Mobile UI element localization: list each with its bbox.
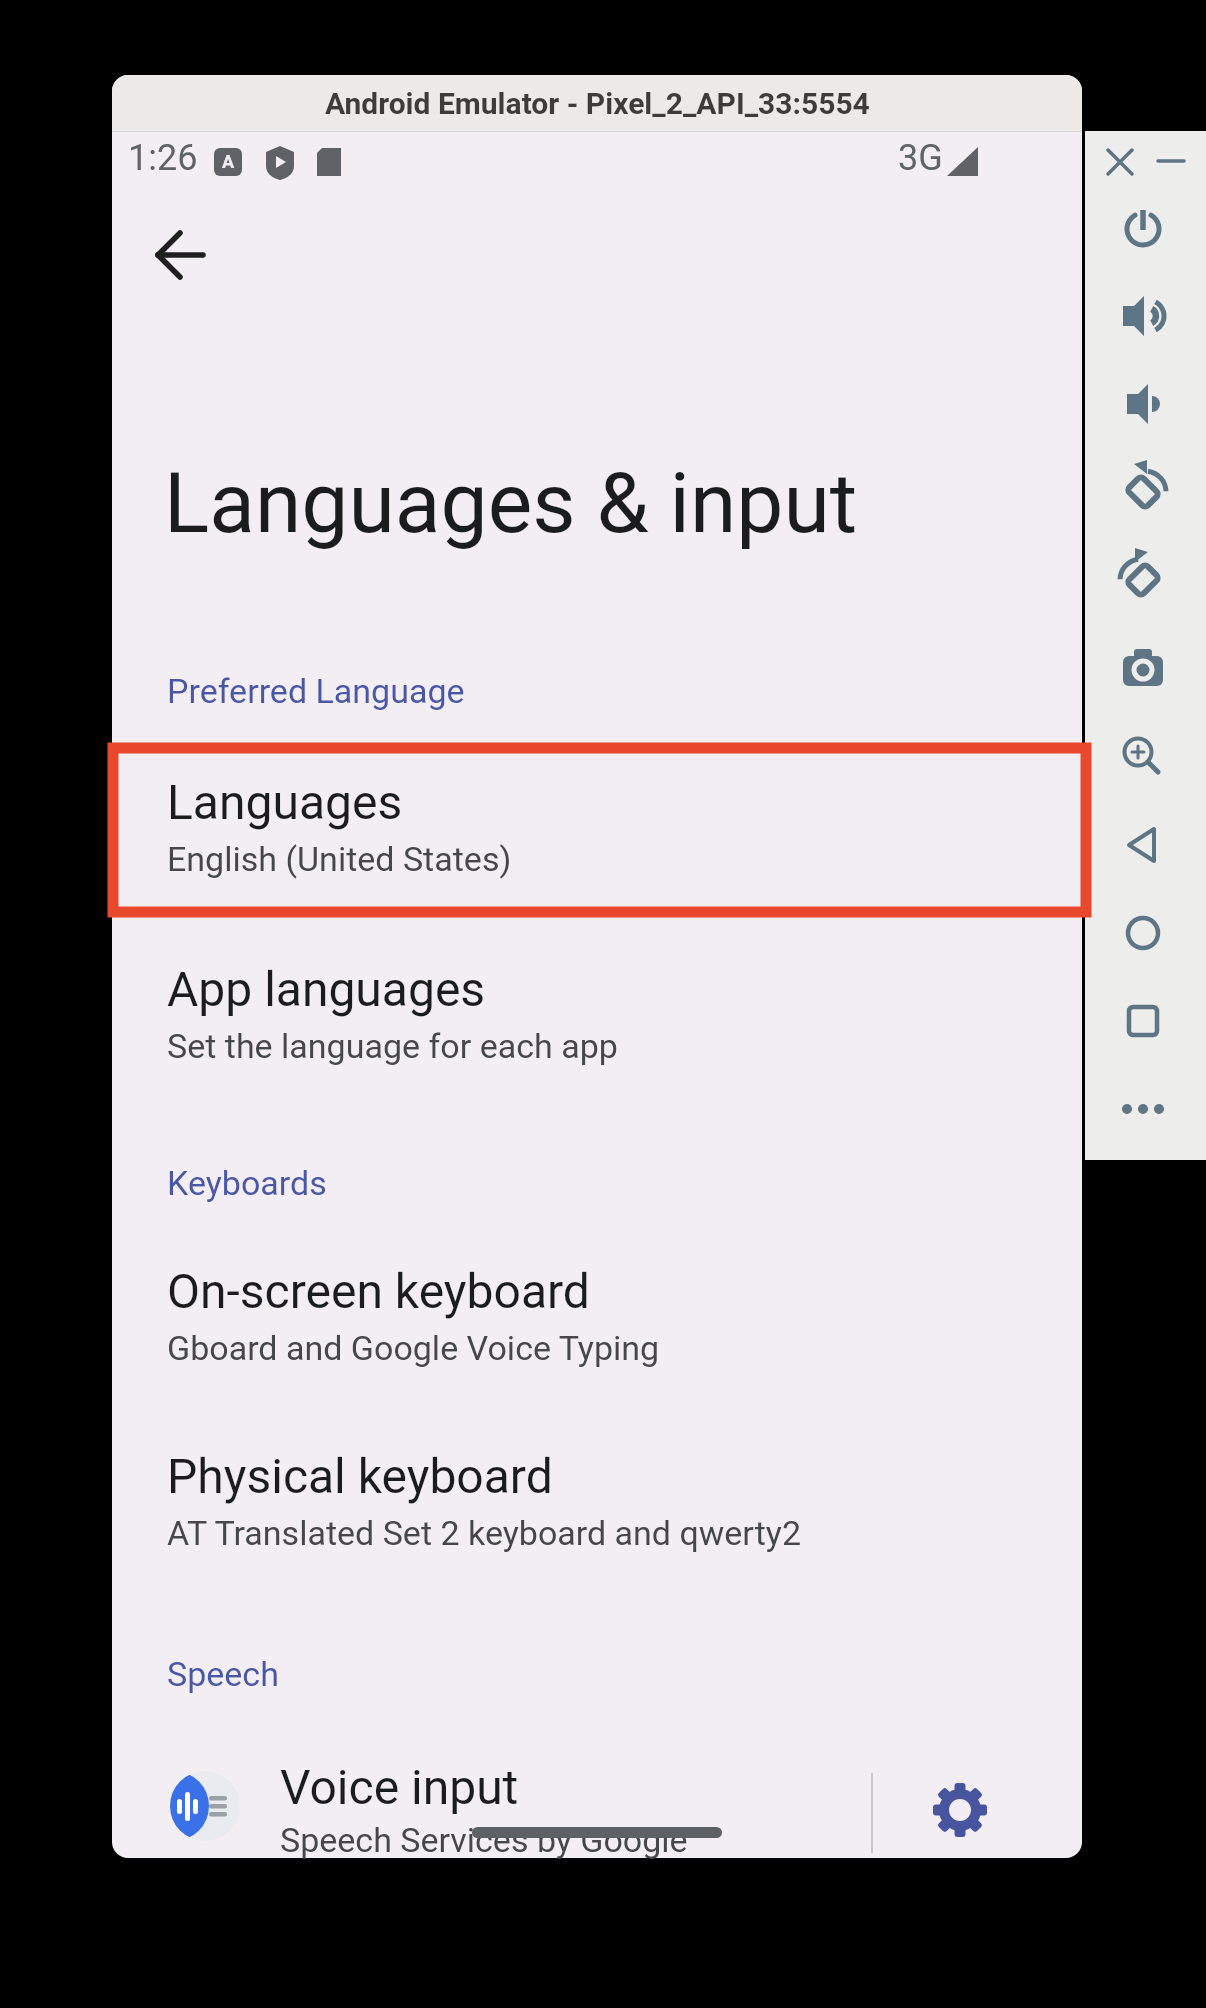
staticText: Set the language for each app xyxy=(167,1026,618,1066)
staticText: Preferred Language xyxy=(167,671,465,711)
button[interactable] xyxy=(1113,199,1173,259)
button[interactable] xyxy=(1113,1079,1173,1139)
button[interactable] xyxy=(1113,903,1173,963)
button[interactable]: Physical keyboard xyxy=(112,1425,1082,1585)
staticText: Languages & input xyxy=(164,454,858,552)
button[interactable] xyxy=(1113,728,1173,788)
staticText: Speech xyxy=(167,1654,279,1694)
button[interactable] xyxy=(1155,146,1187,178)
staticText: AT Translated Set 2 keyboard and qwerty2 xyxy=(167,1513,802,1553)
button[interactable] xyxy=(1113,550,1173,610)
button[interactable]: On-screen keyboard xyxy=(112,1240,1082,1400)
staticText: Physical keyboard xyxy=(167,1448,553,1504)
button[interactable]: Languages xyxy=(112,755,1082,915)
button[interactable] xyxy=(1113,815,1173,875)
button[interactable] xyxy=(1113,638,1173,698)
button[interactable] xyxy=(1104,146,1136,178)
button[interactable] xyxy=(1113,286,1173,346)
button[interactable] xyxy=(142,217,218,293)
staticText: Android Emulator - Pixel_2_API_33:5554 xyxy=(325,86,870,121)
button[interactable] xyxy=(1113,374,1173,434)
staticText: Keyboards xyxy=(167,1163,327,1203)
staticText: On-screen keyboard xyxy=(167,1263,590,1319)
staticText: 1:26 xyxy=(128,137,198,179)
button[interactable] xyxy=(925,1775,995,1845)
button[interactable]: App languages xyxy=(112,940,1082,1100)
staticText: English (United States) xyxy=(167,839,512,879)
button[interactable]: Voice input xyxy=(112,1740,1082,1858)
button[interactable] xyxy=(1113,462,1173,522)
staticText: Languages xyxy=(167,774,403,830)
staticText: Speech Services by Google xyxy=(280,1820,688,1860)
staticText: A xyxy=(222,151,235,172)
staticText: 3G xyxy=(898,137,943,179)
staticText: Gboard and Google Voice Typing xyxy=(167,1328,660,1368)
button[interactable] xyxy=(1113,991,1173,1051)
staticText: App languages xyxy=(167,961,486,1017)
staticText: Voice input xyxy=(280,1759,519,1815)
